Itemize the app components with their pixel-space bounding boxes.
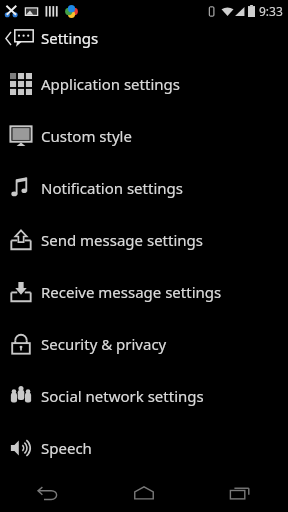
staticText: Social network settings	[41, 386, 204, 406]
staticText: 9:33	[259, 3, 283, 19]
button[interactable]: Application settings	[0, 58, 288, 110]
staticText: Speech	[41, 438, 92, 458]
button[interactable]: Back to Settings	[0, 22, 288, 54]
button[interactable]: Social network settings	[0, 370, 288, 422]
button[interactable]: Receive message settings	[0, 266, 288, 318]
button[interactable]: Security & privacy	[0, 318, 288, 370]
staticText: Security & privacy	[41, 334, 167, 354]
staticText: Receive message settings	[41, 282, 222, 302]
button[interactable]: Home	[114, 474, 174, 512]
staticText: Application settings	[41, 74, 180, 94]
button[interactable]: Send message settings	[0, 214, 288, 266]
staticText: Settings	[41, 28, 99, 48]
button[interactable]: Custom style	[0, 110, 288, 162]
button[interactable]: Notification settings	[0, 162, 288, 214]
staticText: Custom style	[41, 126, 132, 146]
button[interactable]: Recent apps	[210, 474, 270, 512]
staticText: Send message settings	[41, 230, 203, 250]
staticText: Notification settings	[41, 178, 183, 198]
button[interactable]: Speech	[0, 422, 288, 474]
button[interactable]: Back	[18, 474, 78, 512]
